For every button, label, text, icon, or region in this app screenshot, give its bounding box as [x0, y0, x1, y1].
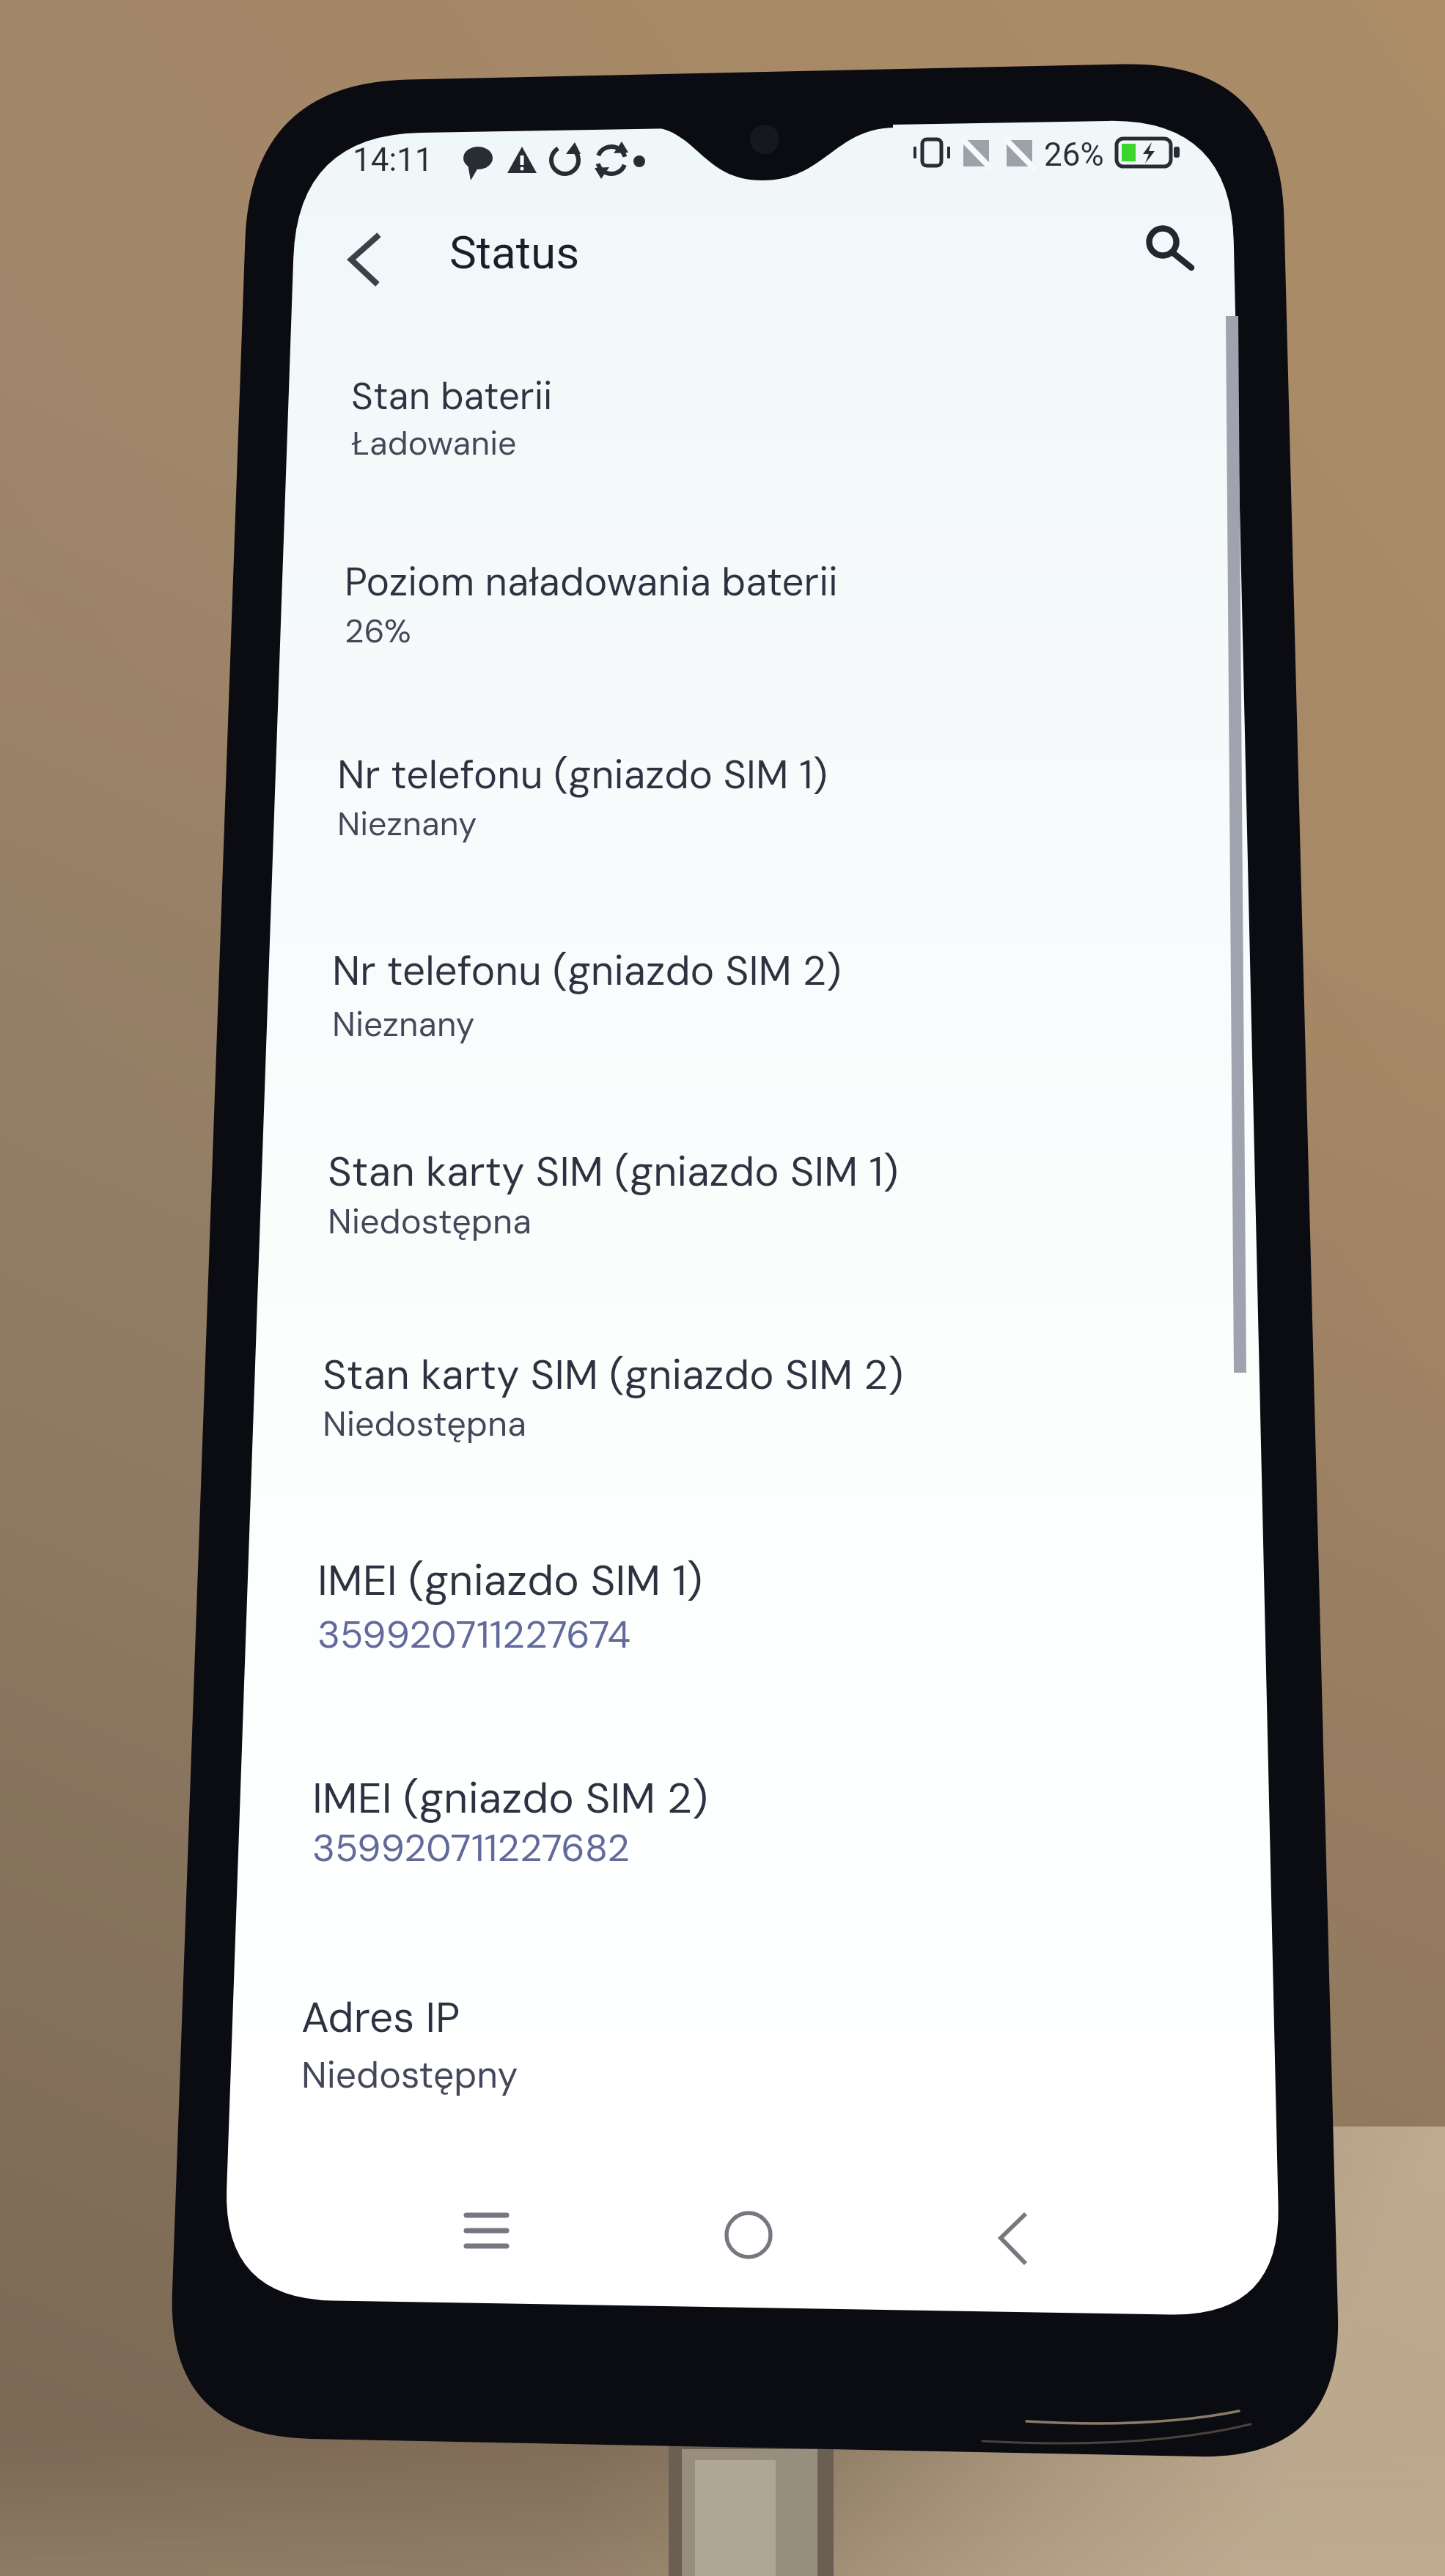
- button[interactable]: Back: [944, 2170, 1081, 2307]
- staticText: IMEI (gniazdo SIM 1): [317, 1552, 703, 1608]
- staticText: Poziom naładowania baterii: [345, 557, 838, 607]
- button[interactable]: [279, 342, 1239, 469]
- staticText: Stan karty SIM (gniazdo SIM 1): [328, 1145, 899, 1198]
- button[interactable]: [279, 526, 1239, 656]
- staticText: Niedostępny: [301, 2051, 518, 2099]
- staticText: Niedostępna: [323, 1401, 527, 1446]
- staticText: 26%: [345, 609, 411, 653]
- staticText: Nieznany: [332, 1002, 475, 1046]
- staticText: Nr telefonu (gniazdo SIM 1): [337, 749, 828, 800]
- staticText: 14:11: [353, 141, 433, 179]
- staticText: Nieznany: [337, 802, 477, 845]
- button[interactable]: Search: [1116, 195, 1210, 289]
- button[interactable]: Recent apps: [418, 2170, 554, 2307]
- button[interactable]: [279, 1522, 1239, 1662]
- staticText: IMEI (gniazdo SIM 2): [312, 1770, 708, 1826]
- staticText: Adres IP: [301, 1990, 460, 2044]
- staticText: Stan karty SIM (gniazdo SIM 2): [323, 1348, 904, 1401]
- button[interactable]: Back: [312, 213, 405, 307]
- button[interactable]: [279, 914, 1239, 1050]
- button[interactable]: [279, 719, 1239, 849]
- button[interactable]: [279, 1115, 1239, 1247]
- staticText: 359920711227682: [312, 1823, 630, 1873]
- staticText: Niedostępna: [328, 1199, 532, 1244]
- button[interactable]: Home: [680, 2170, 817, 2307]
- staticText: Ładowanie: [351, 422, 517, 465]
- button[interactable]: [279, 1318, 1239, 1450]
- button[interactable]: [279, 1740, 1239, 1875]
- staticText: Nr telefonu (gniazdo SIM 2): [332, 944, 842, 997]
- button[interactable]: [279, 1960, 1239, 2102]
- staticText: 26%: [1044, 136, 1104, 174]
- staticText: Status: [449, 226, 580, 279]
- staticText: Stan baterii: [351, 372, 553, 420]
- staticText: 359920711227674: [317, 1610, 631, 1659]
